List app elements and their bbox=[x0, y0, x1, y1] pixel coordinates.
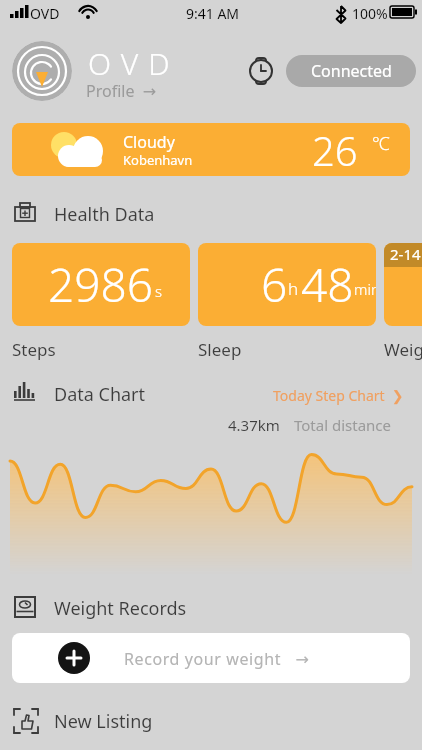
staticText: New Listing bbox=[54, 709, 153, 734]
staticText: h bbox=[288, 277, 299, 300]
staticText: Sleep bbox=[198, 338, 242, 361]
button[interactable]: Profile avatar bbox=[12, 41, 72, 101]
staticText: 2-14 bbox=[390, 244, 421, 264]
button[interactable]: Watch bbox=[247, 56, 275, 86]
staticText: 100% bbox=[352, 4, 388, 23]
button[interactable]: Record your weight → bbox=[12, 633, 410, 683]
staticText: s bbox=[155, 281, 163, 301]
staticText: 48 bbox=[301, 253, 354, 316]
button[interactable]: 2986 bbox=[12, 243, 190, 326]
button[interactable]: 6 bbox=[198, 243, 376, 326]
staticText: ℃ bbox=[372, 131, 390, 156]
staticText: Record your weight → bbox=[124, 648, 310, 670]
staticText: min bbox=[354, 279, 376, 299]
staticText: Kobenhavn bbox=[123, 151, 193, 169]
staticText: 4.37km bbox=[228, 415, 280, 435]
staticText: Profile → bbox=[86, 80, 157, 102]
button[interactable]: Today Step Chart ❯ bbox=[273, 386, 404, 405]
button[interactable]: Connected bbox=[286, 55, 416, 87]
button[interactable]: Cloudy bbox=[12, 123, 410, 176]
button[interactable]: Profile → bbox=[86, 80, 157, 102]
staticText: 6 bbox=[261, 253, 288, 316]
staticText: Health Data bbox=[54, 202, 155, 227]
staticText: Data Chart bbox=[54, 382, 146, 407]
staticText: Weig bbox=[384, 338, 422, 361]
staticText: Today Step Chart ❯ bbox=[273, 386, 404, 405]
staticText: 9:41 AM bbox=[186, 4, 240, 23]
staticText: Weight Records bbox=[54, 596, 187, 621]
staticText: Cloudy bbox=[123, 131, 175, 153]
staticText: OVD bbox=[88, 43, 180, 84]
staticText: 26 bbox=[312, 123, 358, 176]
staticText: OVD bbox=[30, 4, 60, 23]
staticText: Total distance bbox=[294, 415, 392, 435]
staticText: 2986 bbox=[48, 253, 154, 316]
staticText: Connected bbox=[311, 60, 392, 82]
staticText: Steps bbox=[12, 338, 56, 361]
button[interactable]: 2-14 bbox=[384, 243, 422, 326]
